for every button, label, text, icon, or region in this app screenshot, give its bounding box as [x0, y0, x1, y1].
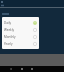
staticText: Weekly — [4, 28, 15, 32]
staticText: Daily — [4, 21, 11, 25]
button[interactable]: Yearly — [2, 40, 39, 47]
button[interactable]: Navigate up — [1, 4, 4, 7]
staticText: Yearly — [4, 42, 13, 46]
button[interactable]: Back — [8, 66, 14, 72]
button[interactable]: Recent apps — [29, 66, 35, 72]
button[interactable]: Monthly — [2, 33, 39, 40]
button[interactable]: Home — [19, 66, 25, 72]
button[interactable]: Daily — [2, 19, 39, 26]
staticText: Monthly — [4, 35, 16, 39]
button[interactable]: Weekly — [2, 26, 39, 33]
